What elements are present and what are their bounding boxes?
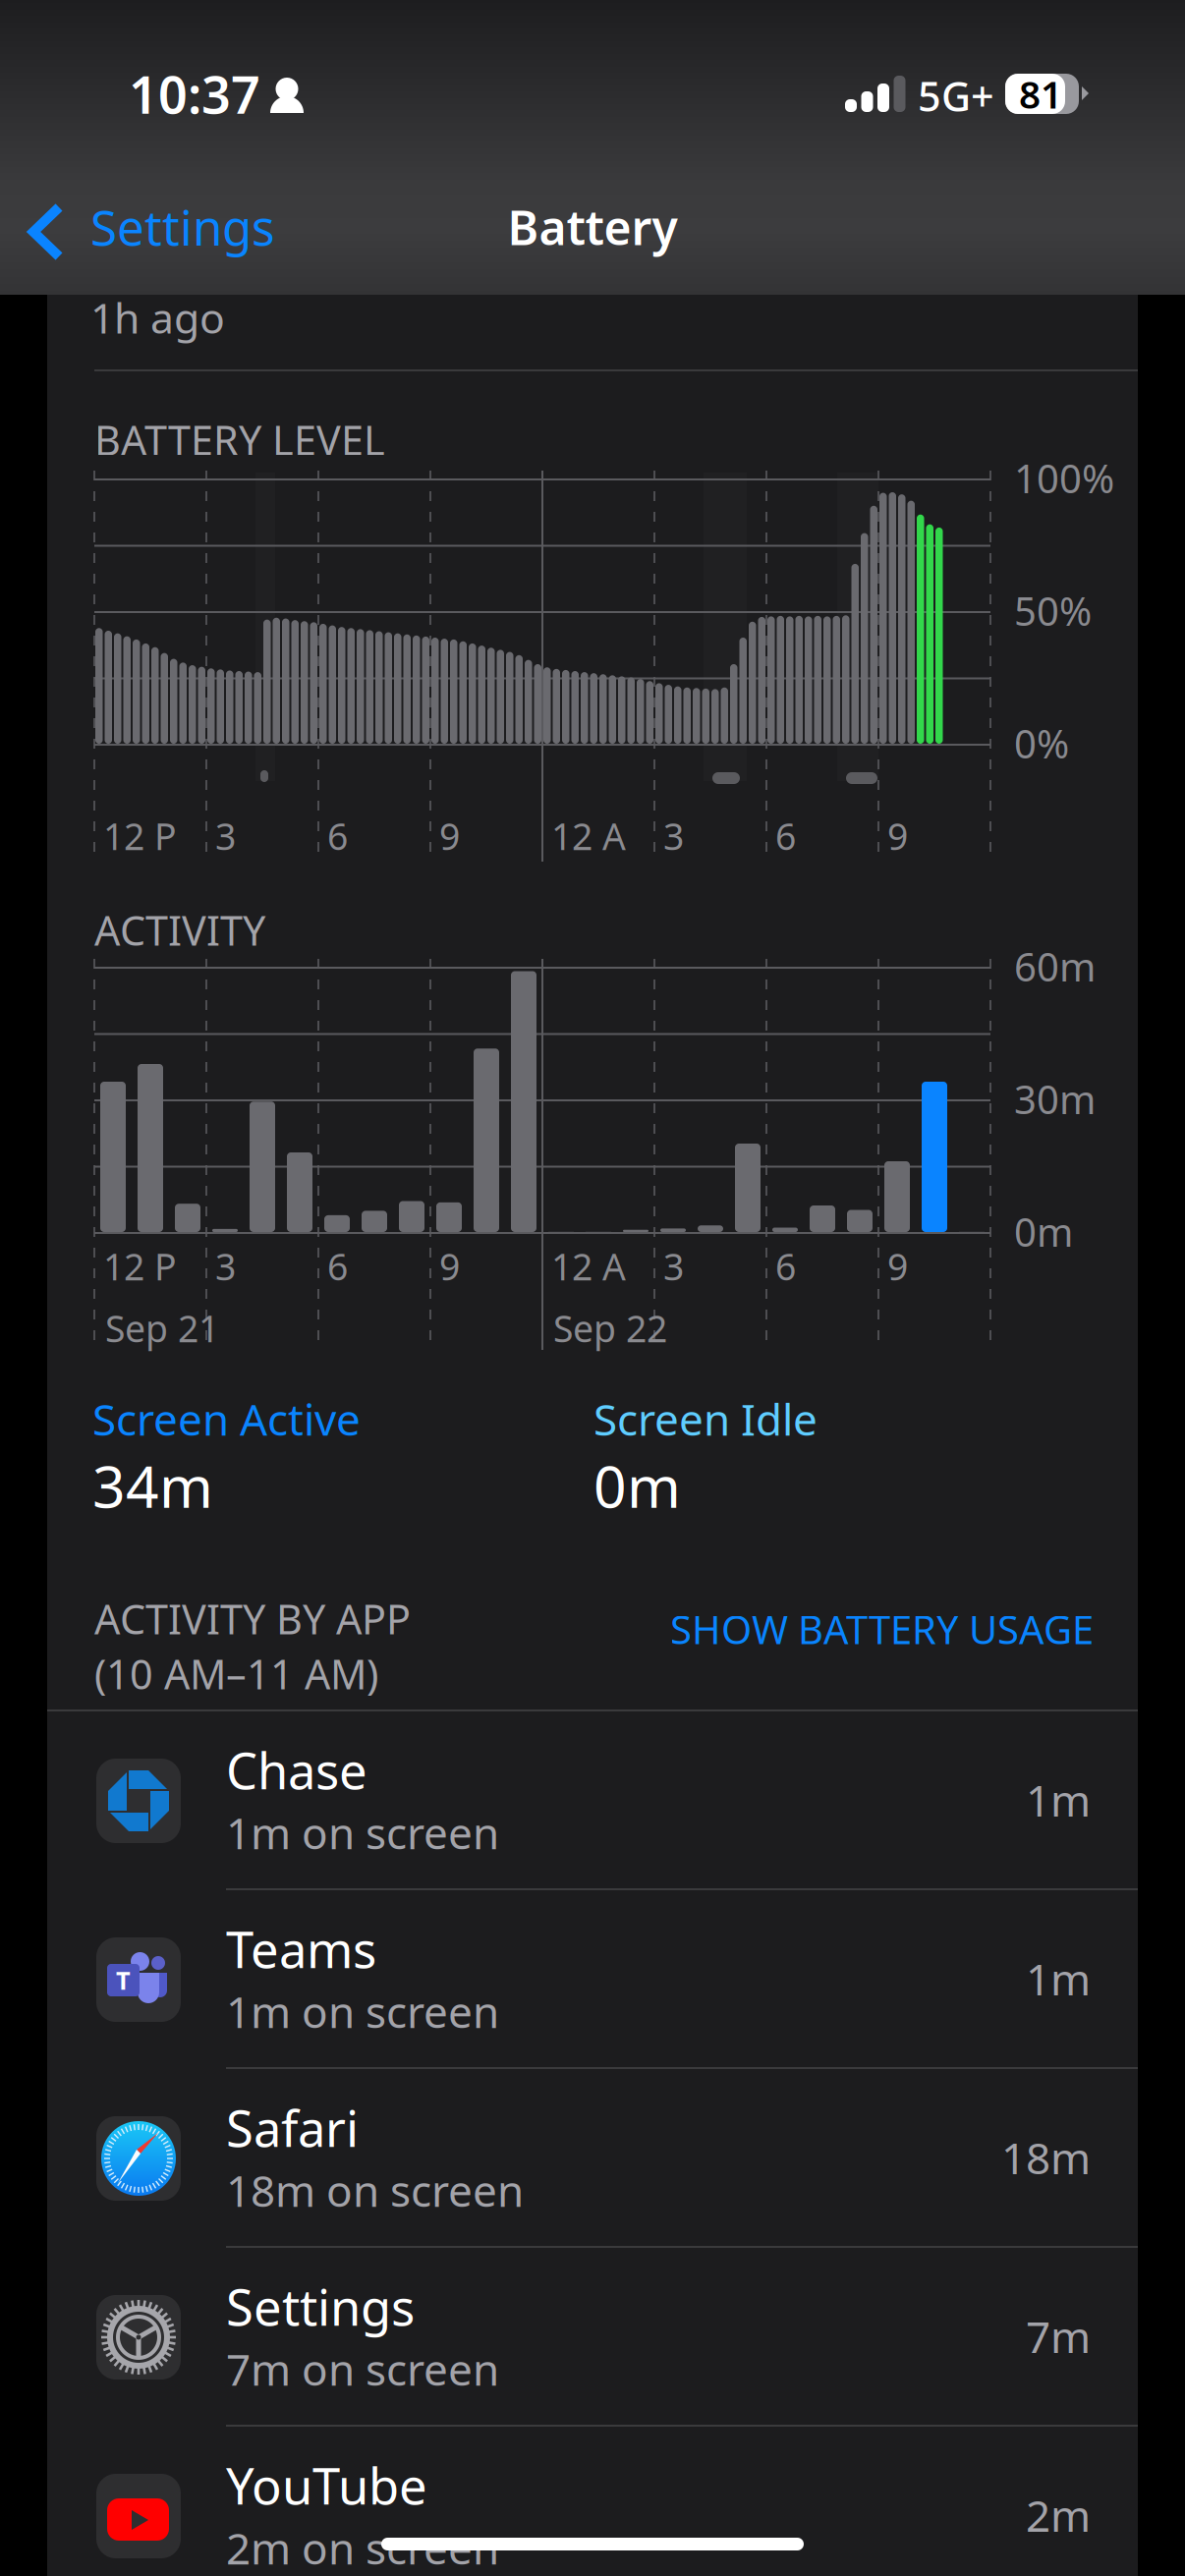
staticText: YouTube	[226, 2452, 427, 2518]
staticText: 2m	[1026, 2486, 1091, 2544]
staticText: T	[116, 1964, 131, 1997]
staticText: 6	[327, 1242, 348, 1291]
staticText: Sep 22	[553, 1304, 667, 1352]
staticText: 100%	[1014, 452, 1114, 504]
button[interactable]: Settings	[0, 178, 314, 276]
staticText: 3	[663, 1242, 684, 1291]
staticText: Safari	[226, 2095, 359, 2161]
staticText: 6	[775, 1242, 796, 1291]
staticText: 1m	[1026, 1771, 1091, 1829]
staticText: 3	[663, 812, 684, 860]
staticText: 18m on screen	[226, 2161, 524, 2219]
staticText: Settings	[226, 2273, 415, 2340]
staticText: 60m	[1014, 940, 1096, 992]
staticText: ACTIVITY	[94, 903, 265, 957]
staticText: 18m	[1001, 2129, 1091, 2186]
staticText: SHOW BATTERY USAGE	[670, 1603, 1094, 1655]
staticText: 7m	[1026, 2308, 1091, 2365]
staticText: 3	[215, 1242, 236, 1291]
staticText: Sep 21	[105, 1304, 219, 1352]
staticText: 0m	[1014, 1205, 1073, 1258]
staticText: 12 A	[551, 812, 626, 860]
staticText: BATTERY LEVEL	[94, 413, 385, 467]
staticText: Screen Idle	[593, 1390, 818, 1448]
staticText: ACTIVITY BY APP	[94, 1592, 411, 1646]
staticText: Screen Active	[92, 1390, 361, 1448]
button[interactable]: T	[47, 1890, 1138, 2067]
button[interactable]: Settings	[47, 2248, 1138, 2425]
staticText: 1m	[1026, 1950, 1091, 2007]
staticText: 6	[327, 812, 348, 860]
staticText: 1m on screen	[226, 1804, 499, 1861]
staticText: 1h ago	[90, 290, 225, 345]
staticText: 50%	[1014, 585, 1092, 637]
staticText: Teams	[226, 1916, 376, 1982]
staticText: 5G+	[918, 69, 994, 123]
staticText: 30m	[1014, 1073, 1096, 1125]
staticText: 9	[887, 1242, 908, 1291]
staticText: 1m on screen	[226, 1983, 499, 2040]
button[interactable]: SHOW BATTERY USAGE	[543, 1601, 1094, 1656]
staticText: Chase	[226, 1737, 367, 1803]
staticText: 81	[1019, 69, 1062, 119]
staticText: Settings	[90, 195, 275, 259]
staticText: 2m on screen	[226, 2519, 499, 2576]
staticText: 34m	[92, 1447, 213, 1524]
staticText: 3	[215, 812, 236, 860]
staticText: 0%	[1014, 717, 1069, 769]
staticText: 12 A	[551, 1242, 626, 1291]
staticText: 9	[439, 1242, 460, 1291]
staticText: 12 P	[103, 812, 177, 860]
staticText: 0m	[593, 1447, 681, 1524]
staticText: 7m on screen	[226, 2340, 499, 2398]
staticText: 12 P	[103, 1242, 177, 1291]
staticText: 9	[887, 812, 908, 860]
button[interactable]: Chase	[47, 1711, 1138, 1888]
staticText: Battery	[508, 196, 677, 258]
button[interactable]: YouTube	[47, 2427, 1138, 2576]
button[interactable]: Safari	[47, 2069, 1138, 2246]
staticText: 6	[775, 812, 796, 860]
staticText: 9	[439, 812, 460, 860]
staticText: 10:37	[129, 60, 260, 128]
staticText: (10 AM–11 AM)	[94, 1647, 378, 1701]
